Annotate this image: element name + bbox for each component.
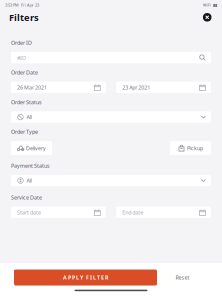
staticText: Order ID <box>11 39 32 46</box>
button[interactable]: All <box>11 175 211 186</box>
staticText: Order Status <box>11 99 42 106</box>
staticText: End date <box>122 209 143 216</box>
staticText: #ID <box>17 54 26 61</box>
button[interactable]: All <box>11 111 211 123</box>
staticText: 26 Mar 2021 <box>17 84 47 91</box>
button[interactable]: 26 Mar 2021 <box>11 82 106 93</box>
staticText: Payment Status <box>11 162 50 169</box>
staticText: All <box>26 113 31 121</box>
staticText: Delivery <box>26 145 46 152</box>
staticText: 3:53 PM Fri Apr 23 <box>5 2 39 8</box>
staticText: Order Type <box>11 128 38 135</box>
button[interactable]: Delivery <box>11 141 52 155</box>
staticText: A P P L Y F I L T E R <box>63 274 108 281</box>
staticText: WiFi ▮▮ <box>203 2 217 8</box>
button[interactable]: A P P L Y F I L T E R <box>14 269 157 285</box>
button[interactable]: Start date <box>11 207 106 218</box>
staticText: All <box>26 177 31 184</box>
staticText: Reset <box>175 274 189 281</box>
button[interactable]: Pickup <box>170 141 211 155</box>
staticText: Pickup <box>187 145 203 152</box>
button[interactable]: Close <box>200 10 214 24</box>
button[interactable]: 23 Apr 2021 <box>116 82 211 93</box>
staticText: Filters <box>9 11 39 23</box>
button[interactable]: End date <box>116 207 211 218</box>
staticText: Start date <box>17 209 41 216</box>
staticText: Order Date <box>11 69 38 76</box>
staticText: Service Date <box>11 194 42 201</box>
button[interactable]: #ID <box>11 52 211 63</box>
staticText: 23 Apr 2021 <box>122 84 150 91</box>
button[interactable]: Reset <box>165 269 199 285</box>
